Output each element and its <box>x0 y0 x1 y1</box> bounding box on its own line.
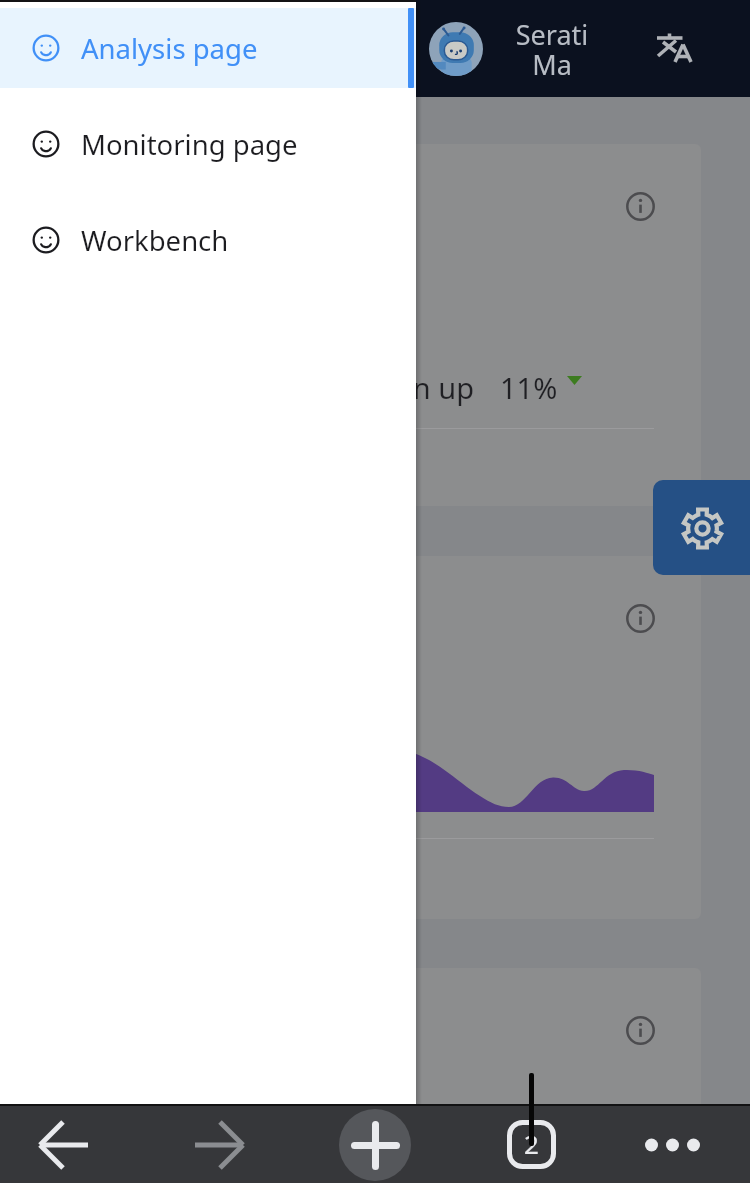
staticText: 2 <box>524 1126 539 1161</box>
button[interactable]: Info <box>618 184 663 229</box>
staticText: Weekly turn up <box>268 368 474 407</box>
button[interactable]: Workbench <box>0 200 416 280</box>
button[interactable]: Info <box>618 1008 663 1053</box>
staticText: Workbench <box>81 222 229 259</box>
staticText: Analysis page <box>81 30 258 67</box>
button[interactable]: Forward <box>169 1106 269 1183</box>
button[interactable]: Analysis page <box>0 8 416 88</box>
button[interactable]: Tabs: 2 open <box>481 1106 581 1183</box>
button[interactable]: Translate <box>641 17 701 77</box>
button[interactable]: New tab <box>325 1106 425 1183</box>
staticText: 11% <box>500 368 558 407</box>
button[interactable]: Back <box>14 1106 114 1183</box>
button[interactable]: More options <box>622 1106 722 1183</box>
staticText: Monitoring page <box>81 126 298 163</box>
button[interactable]: Settings <box>653 480 750 575</box>
button[interactable]: Monitoring page <box>0 104 416 184</box>
button[interactable]: Info <box>618 596 663 641</box>
staticText: Serati Ma <box>497 16 607 82</box>
